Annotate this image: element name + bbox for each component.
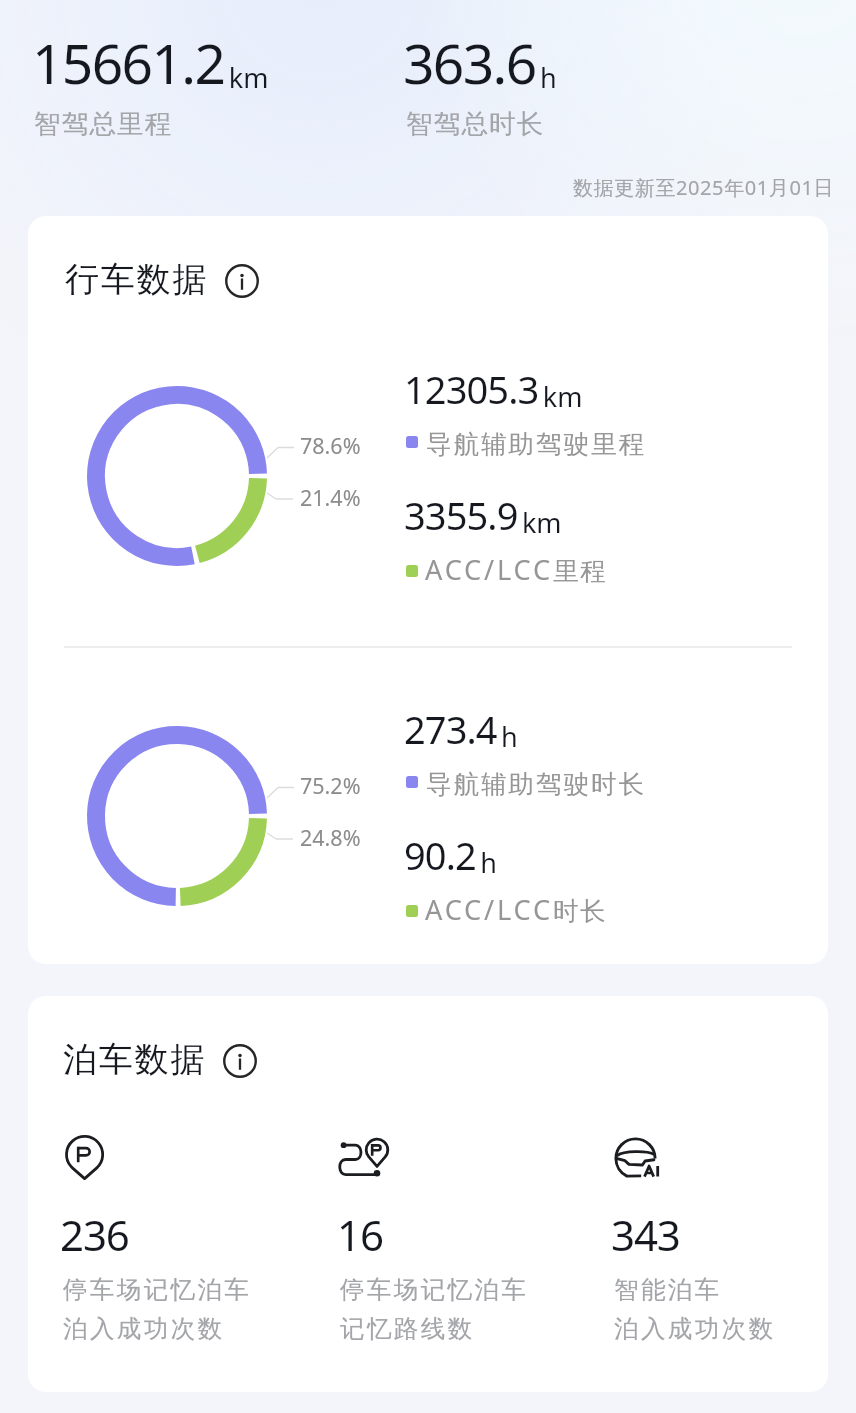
staticText: 记忆路线数 bbox=[340, 1313, 475, 1344]
button[interactable]: 273.4 h bbox=[404, 703, 645, 800]
other: Info bbox=[225, 263, 259, 297]
staticText: 停车场记忆泊车 bbox=[340, 1274, 529, 1305]
staticText: 343 bbox=[611, 1206, 680, 1263]
button[interactable]: 16 bbox=[340, 1124, 610, 1354]
staticText: 导航辅助驾驶里程 bbox=[425, 428, 645, 460]
staticText: 75.2% bbox=[300, 771, 361, 800]
staticText: 智驾总里程 bbox=[34, 107, 173, 140]
button[interactable]: 泊车数据 bbox=[63, 1038, 261, 1081]
staticText: 16 bbox=[337, 1206, 383, 1263]
button[interactable]: 3355.9 km bbox=[404, 489, 608, 591]
staticText: 236 bbox=[60, 1206, 129, 1263]
staticText: 90.2 h bbox=[404, 829, 497, 881]
staticText: ACC/LCC时长 bbox=[425, 891, 608, 928]
staticText: 273.4 h bbox=[404, 703, 518, 755]
staticText: ACC/LCC里程 bbox=[425, 551, 608, 588]
button[interactable]: 343 bbox=[614, 1124, 828, 1354]
staticText: 泊车数据 bbox=[63, 1038, 207, 1081]
staticText: 泊入成功次数 bbox=[63, 1313, 225, 1344]
staticText: 24.8% bbox=[300, 823, 361, 852]
staticText: 78.6% bbox=[300, 431, 361, 460]
staticText: 数据更新至2025年01月01日 bbox=[573, 174, 835, 201]
staticText: 智驾总时长 bbox=[406, 107, 545, 140]
button[interactable]: 12305.3 km bbox=[404, 363, 645, 460]
staticText: 智能泊车 bbox=[614, 1274, 722, 1305]
staticText: 行车数据 bbox=[65, 258, 209, 301]
staticText: 12305.3 km bbox=[404, 363, 583, 415]
staticText: 导航辅助驾驶时长 bbox=[425, 768, 645, 800]
staticText: 15661.2 km bbox=[32, 25, 269, 100]
button[interactable]: 行车数据 bbox=[65, 258, 263, 301]
staticText: 363.6 h bbox=[403, 25, 557, 100]
staticText: 21.4% bbox=[300, 483, 361, 512]
button[interactable]: 90.2 h bbox=[404, 829, 608, 931]
staticText: 停车场记忆泊车 bbox=[63, 1274, 252, 1305]
staticText: 泊入成功次数 bbox=[614, 1313, 776, 1344]
button[interactable]: 236 bbox=[63, 1124, 333, 1354]
other: Info bbox=[223, 1043, 257, 1077]
staticText: 3355.9 km bbox=[404, 489, 562, 541]
